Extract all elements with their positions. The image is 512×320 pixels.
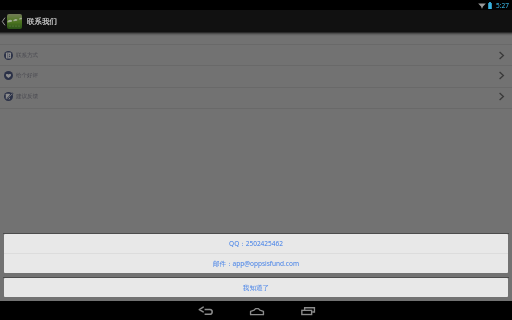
staticText: 联系方式 bbox=[16, 52, 38, 59]
staticText: 5:27 bbox=[496, 1, 509, 10]
button[interactable]: Back bbox=[187, 301, 224, 320]
button[interactable]: Home bbox=[238, 301, 275, 320]
staticText: QQ：2502425462 bbox=[229, 239, 283, 248]
button[interactable]: 我知道了 bbox=[4, 278, 508, 297]
staticText: 邮件：app@oppsisfund.com bbox=[213, 259, 299, 268]
staticText: 我知道了 bbox=[243, 284, 269, 292]
button[interactable]: QQ：2502425462 bbox=[4, 234, 508, 253]
staticText: 联系我们 bbox=[27, 17, 57, 26]
button[interactable]: 我知道了 bbox=[4, 278, 508, 297]
button[interactable]: 邮件：app@oppsisfund.com bbox=[4, 254, 508, 273]
button[interactable]: 联系方式 bbox=[0, 45, 512, 65]
button[interactable]: 给个好评 bbox=[0, 66, 512, 87]
button[interactable]: 建议反馈 bbox=[0, 88, 512, 108]
button[interactable]: Navigate up bbox=[0, 10, 7, 32]
button[interactable]: Recent apps bbox=[289, 301, 326, 320]
staticText: 给个好评 bbox=[16, 72, 38, 79]
staticText: 建议反馈 bbox=[16, 93, 38, 100]
